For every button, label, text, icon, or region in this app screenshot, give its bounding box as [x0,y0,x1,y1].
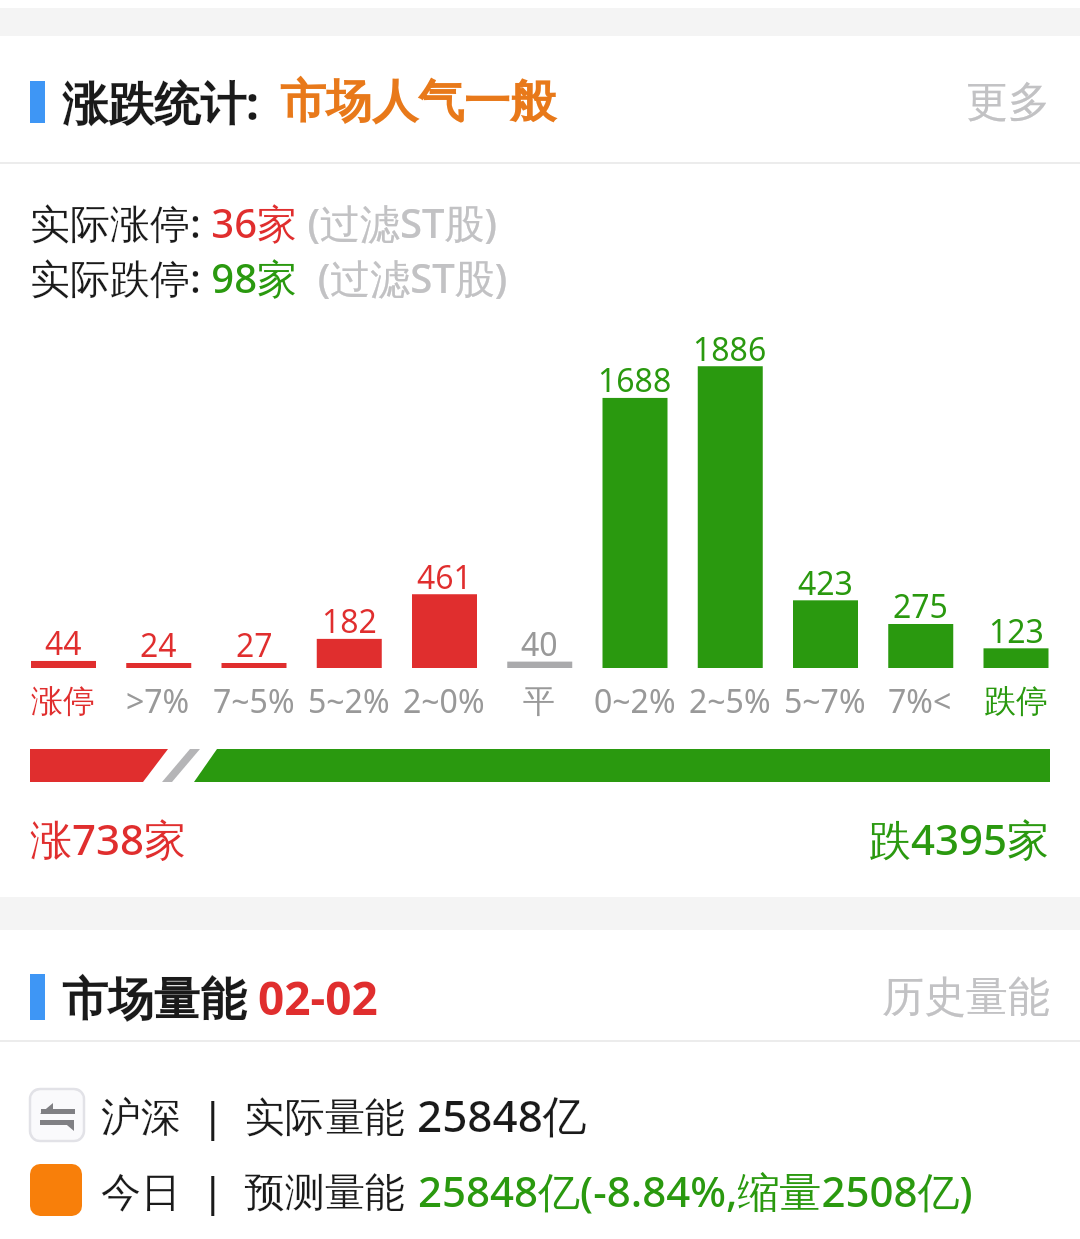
staticText: 2~0% [403,679,485,723]
staticText: 5~2% [308,679,390,723]
staticText: 历史量能 [882,971,1050,1024]
staticText: 实际跌停: 98家 (过滤ST股) [30,250,508,305]
staticText: 市场人气一般 [280,73,556,131]
staticText: 实际涨停: 36家 (过滤ST股) [30,195,497,250]
staticText: 27 [236,623,273,667]
staticText: 今日 | 预测量能 [101,1163,405,1218]
staticText: 1688 [598,358,672,402]
button[interactable] [30,1089,84,1141]
button[interactable]: 更多 [350,60,1050,144]
staticText: 25848亿 [417,1085,587,1145]
staticText: 涨跌统计: [62,71,259,134]
button[interactable]: 今日 | 预测量能 [101,1150,405,1230]
staticText: 5~7% [784,679,866,723]
staticText: 2~5% [689,679,771,723]
staticText: 7%< [888,679,952,723]
staticText: 182 [322,599,377,643]
staticText: 24 [140,623,177,667]
staticText: 44 [45,621,82,665]
staticText: 更多 [966,76,1050,129]
staticText: 461 [417,555,472,599]
button[interactable]: 历史量能 [350,955,1050,1039]
staticText: 1886 [693,327,767,371]
staticText: 40 [521,622,558,666]
staticText: 沪深 | 实际量能 [101,1088,405,1143]
staticText: 涨停 [31,681,95,721]
staticText: 平 [523,681,555,721]
staticText: 涨738家 [30,810,187,867]
staticText: 跌停 [984,681,1048,721]
staticText: 7~5% [213,679,295,723]
button[interactable]: 沪深 | 实际量能 [101,1075,405,1155]
staticText: 跌4395家 [869,810,1050,867]
staticText: >7% [126,679,190,723]
staticText: 423 [798,561,853,605]
staticText: 275 [893,584,948,628]
staticText: 25848亿(-8.84%,缩量2508亿) [418,1162,973,1219]
staticText: 市场量能 02-02 [62,966,378,1029]
staticText: 0~2% [594,679,676,723]
button[interactable] [30,1164,82,1216]
staticText: 123 [989,609,1044,653]
